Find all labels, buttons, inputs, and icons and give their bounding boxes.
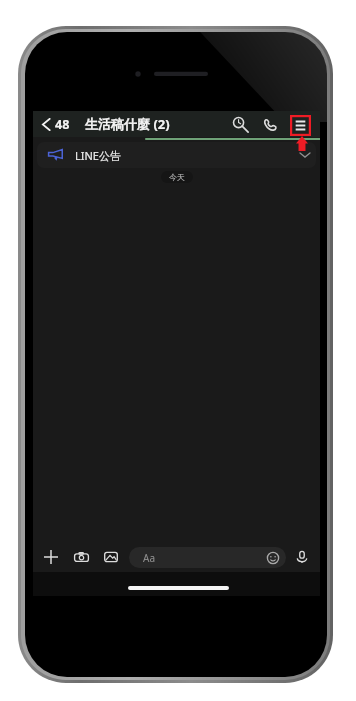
staticText: 48 <box>55 116 70 133</box>
button[interactable]: Add <box>40 546 62 568</box>
button[interactable]: Gallery <box>100 546 122 568</box>
button[interactable]: Voice message <box>291 546 313 568</box>
staticText: 生活稿什麼 (2) <box>85 115 170 133</box>
button[interactable]: Camera <box>70 546 92 568</box>
button[interactable]: Search <box>231 115 249 133</box>
button[interactable]: Menu <box>290 115 311 136</box>
staticText: LINE公告 <box>75 148 121 163</box>
button[interactable]: 48 <box>38 113 73 135</box>
button[interactable]: Call <box>261 115 279 133</box>
button[interactable]: LINE公告 <box>37 142 316 168</box>
button[interactable]: Aa <box>129 547 286 568</box>
staticText: 今天 <box>169 172 185 182</box>
staticText: Aa <box>143 551 155 565</box>
